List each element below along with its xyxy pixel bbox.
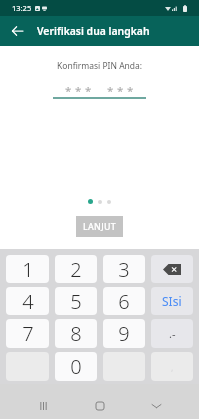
button[interactable]: Back xyxy=(0,16,34,46)
staticText: 7 xyxy=(22,320,34,347)
button[interactable]: 6 xyxy=(103,287,145,315)
button[interactable]: 0 xyxy=(55,352,97,381)
staticText: 13:25 xyxy=(12,3,32,13)
button[interactable]: 7 xyxy=(6,319,49,348)
button[interactable]: Recents xyxy=(15,392,72,419)
staticText: LANJUT xyxy=(83,221,117,233)
staticText: * xyxy=(117,83,124,99)
staticText: * xyxy=(107,83,114,99)
button[interactable]: LANJUT xyxy=(76,216,123,237)
staticText: .- xyxy=(169,326,176,341)
button[interactable]: 9 xyxy=(103,319,145,348)
button[interactable]: 5 xyxy=(55,287,97,315)
staticText: 8 xyxy=(70,320,82,347)
staticText: * xyxy=(75,83,82,99)
staticText: Konfirmasi PIN Anda: xyxy=(57,60,143,72)
button[interactable]: Hide keyboard xyxy=(128,392,184,419)
staticText: 6 xyxy=(118,288,130,315)
button[interactable]: SIsi xyxy=(151,287,193,315)
staticText: 4 xyxy=(22,288,34,315)
button[interactable]: Backspace xyxy=(151,255,193,283)
staticText: 0 xyxy=(70,353,82,380)
button[interactable]: .- xyxy=(151,319,193,348)
button[interactable]: 2 xyxy=(55,255,97,283)
staticText: 5 xyxy=(70,288,82,315)
staticText: SIsi xyxy=(162,293,182,309)
button[interactable]: 8 xyxy=(55,319,97,348)
staticText: * xyxy=(85,83,92,99)
staticText: * xyxy=(127,83,134,99)
staticText: 9 xyxy=(118,320,130,347)
button[interactable]: Home xyxy=(72,392,128,419)
button[interactable]: 1 xyxy=(6,255,49,283)
button[interactable]: 4 xyxy=(6,287,49,315)
staticText: * xyxy=(65,83,72,99)
button[interactable]: 3 xyxy=(103,255,145,283)
staticText: Verifikasi dua langkah xyxy=(37,24,150,38)
staticText: 1 xyxy=(22,256,34,283)
staticText: 3 xyxy=(118,256,130,283)
staticText: 2 xyxy=(70,256,82,283)
